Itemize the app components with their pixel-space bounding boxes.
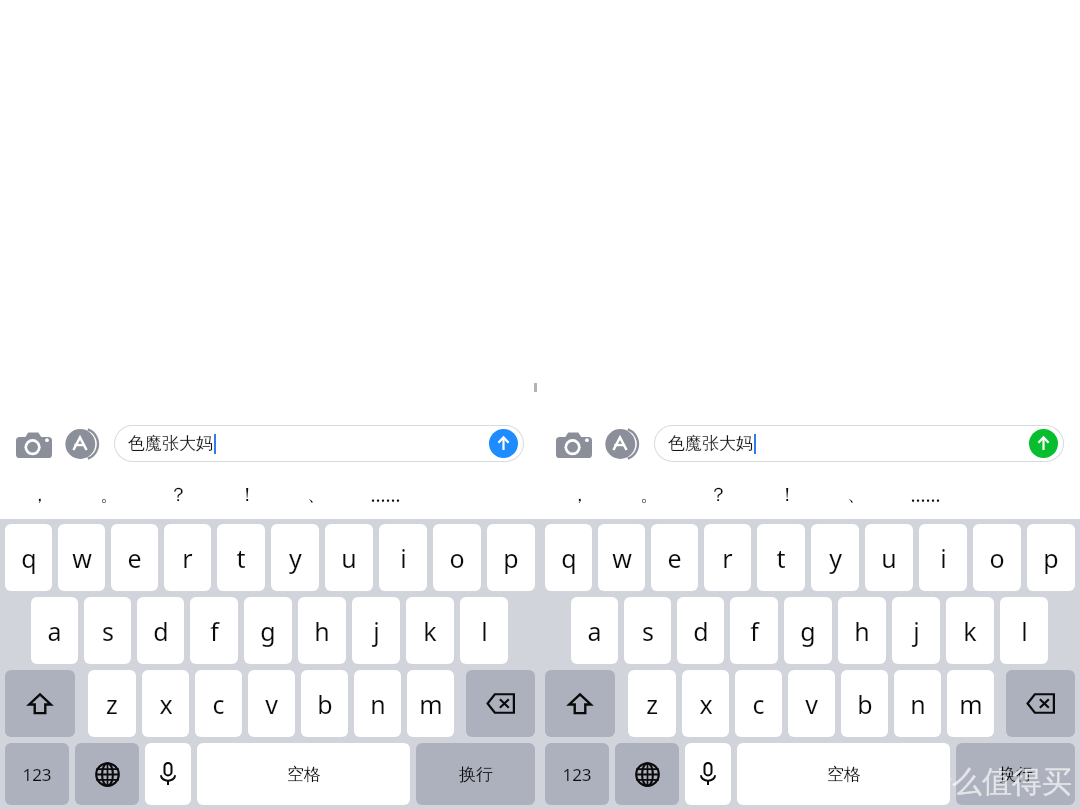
button[interactable]: s [84, 597, 131, 664]
button[interactable]: b [301, 670, 348, 737]
button[interactable]: x [682, 670, 729, 737]
button[interactable]: j [892, 597, 940, 664]
button[interactable]: m [947, 670, 994, 737]
button[interactable]: l [1000, 597, 1048, 664]
button[interactable]: a [31, 597, 78, 664]
button[interactable]: ， [544, 471, 614, 519]
button[interactable]: 色魔张大妈 [114, 425, 524, 462]
button[interactable]: r [164, 524, 211, 591]
button[interactable]: 。 [74, 471, 144, 519]
staticText: a [587, 614, 602, 648]
button[interactable]: Shift [545, 670, 615, 737]
button[interactable]: ？ [144, 471, 213, 519]
button[interactable]: z [88, 670, 136, 737]
button[interactable]: e [651, 524, 698, 591]
button[interactable]: e [111, 524, 158, 591]
button[interactable]: w [58, 524, 105, 591]
button[interactable]: 123 [5, 743, 69, 805]
button[interactable]: c [735, 670, 782, 737]
button[interactable]: y [271, 524, 319, 591]
button[interactable]: r [704, 524, 751, 591]
button[interactable]: 换行 [956, 743, 1075, 805]
button[interactable]: 、 [282, 471, 351, 519]
button[interactable]: Switch keyboard [75, 743, 139, 805]
button[interactable]: …… [351, 471, 420, 519]
button[interactable]: ！ [753, 471, 822, 519]
button[interactable]: 色魔张大妈 [654, 425, 1064, 462]
staticText: ！ [238, 483, 257, 507]
button[interactable]: t [757, 524, 805, 591]
button[interactable]: n [894, 670, 941, 737]
button[interactable]: u [325, 524, 373, 591]
button[interactable]: Shift [5, 670, 75, 737]
staticText: s [102, 614, 114, 648]
button[interactable]: 空格 [737, 743, 950, 805]
button[interactable]: Dictate [685, 743, 731, 805]
button[interactable]: h [298, 597, 346, 664]
staticText: q [561, 541, 577, 575]
button[interactable]: o [433, 524, 481, 591]
button[interactable]: App Store [62, 424, 102, 464]
button[interactable]: w [598, 524, 645, 591]
button[interactable]: 空格 [197, 743, 410, 805]
staticText: h [854, 614, 870, 648]
button[interactable]: u [865, 524, 913, 591]
staticText: r [722, 541, 733, 575]
button[interactable]: y [811, 524, 859, 591]
button[interactable]: g [784, 597, 832, 664]
button[interactable]: m [407, 670, 454, 737]
staticText: g [260, 614, 276, 648]
button[interactable]: q [545, 524, 592, 591]
staticText: y [829, 541, 842, 575]
button[interactable]: 123 [545, 743, 609, 805]
button[interactable]: q [5, 524, 52, 591]
button[interactable]: Send [1029, 429, 1058, 458]
button[interactable]: Camera [554, 424, 594, 464]
button[interactable]: t [217, 524, 265, 591]
button[interactable]: c [195, 670, 242, 737]
button[interactable]: n [354, 670, 401, 737]
button[interactable]: s [624, 597, 671, 664]
button[interactable]: 。 [614, 471, 684, 519]
staticText: 换行 [999, 764, 1033, 785]
button[interactable]: d [677, 597, 724, 664]
button[interactable]: b [841, 670, 888, 737]
button[interactable]: g [244, 597, 292, 664]
button[interactable]: Send [489, 429, 518, 458]
button[interactable]: ， [4, 471, 74, 519]
button[interactable]: o [973, 524, 1021, 591]
staticText: u [881, 541, 897, 575]
button[interactable]: Backspace [1006, 670, 1075, 737]
button[interactable]: p [487, 524, 535, 591]
button[interactable]: ？ [684, 471, 753, 519]
button[interactable]: 换行 [416, 743, 535, 805]
button[interactable]: j [352, 597, 400, 664]
staticText: v [805, 687, 818, 721]
button[interactable]: p [1027, 524, 1075, 591]
staticText: 换行 [459, 764, 493, 785]
button[interactable]: v [788, 670, 835, 737]
staticText: w [612, 541, 632, 575]
button[interactable]: x [142, 670, 189, 737]
button[interactable]: Switch keyboard [615, 743, 679, 805]
button[interactable]: i [919, 524, 967, 591]
button[interactable]: App Store [602, 424, 642, 464]
button[interactable]: a [571, 597, 618, 664]
button[interactable]: Camera [14, 424, 54, 464]
button[interactable]: i [379, 524, 427, 591]
staticText: s [642, 614, 654, 648]
button[interactable]: f [730, 597, 778, 664]
button[interactable]: d [137, 597, 184, 664]
button[interactable]: v [248, 670, 295, 737]
button[interactable]: l [460, 597, 508, 664]
button[interactable]: ！ [213, 471, 282, 519]
button[interactable]: Backspace [466, 670, 535, 737]
button[interactable]: Dictate [145, 743, 191, 805]
button[interactable]: f [190, 597, 238, 664]
button[interactable]: k [406, 597, 454, 664]
button[interactable]: 、 [822, 471, 891, 519]
button[interactable]: z [628, 670, 676, 737]
button[interactable]: h [838, 597, 886, 664]
button[interactable]: …… [891, 471, 960, 519]
button[interactable]: k [946, 597, 994, 664]
